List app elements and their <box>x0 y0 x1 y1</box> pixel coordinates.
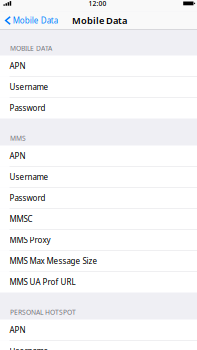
staticText: APN <box>9 325 25 335</box>
staticText: MMSC <box>9 214 32 224</box>
staticText: MMS UA Prof URL <box>9 277 75 287</box>
button[interactable]: APN <box>0 145 197 166</box>
staticText: Username <box>9 82 48 92</box>
button[interactable]: Username <box>0 166 197 187</box>
staticText: Username <box>9 172 48 182</box>
button[interactable]: MMS UA Prof URL <box>0 271 197 292</box>
staticText: Mobile Data <box>72 14 127 27</box>
staticText: MMS Max Message Size <box>9 256 97 266</box>
button[interactable]: Username <box>0 76 197 97</box>
staticText: APN <box>9 151 25 161</box>
button[interactable]: Username <box>0 340 197 350</box>
button[interactable]: MMSC <box>0 208 197 229</box>
staticText: Password <box>9 103 45 113</box>
staticText: APN <box>9 61 25 71</box>
button[interactable]: MMS Proxy <box>0 229 197 250</box>
staticText: 12:00 <box>89 0 107 8</box>
staticText: Mobile Data <box>13 15 58 26</box>
button[interactable]: Password <box>0 187 197 208</box>
button[interactable]: APN <box>0 55 197 76</box>
button[interactable]: Mobile Data <box>0 11 61 29</box>
staticText: PERSONAL HOTSPOT <box>10 308 76 316</box>
button[interactable]: MMS Max Message Size <box>0 250 197 271</box>
button[interactable]: Password <box>0 97 197 118</box>
staticText: Password <box>9 193 45 203</box>
staticText: MMS <box>10 134 26 142</box>
staticText: MMS Proxy <box>9 235 50 245</box>
button[interactable]: APN <box>0 319 197 340</box>
staticText: MOBILE DATA <box>10 44 52 52</box>
staticText: Username <box>9 346 48 350</box>
